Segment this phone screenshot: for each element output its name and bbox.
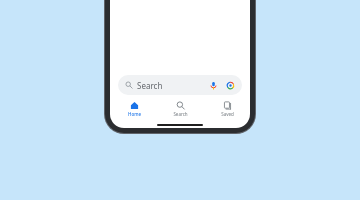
button[interactable]: Google Lens (224, 79, 236, 91)
button[interactable]: Saved (204, 99, 250, 119)
button[interactable]: Search (157, 99, 203, 119)
staticText: Saved (221, 111, 234, 117)
button[interactable]: Search (118, 75, 242, 95)
staticText: Search (173, 111, 188, 117)
button[interactable]: Voice search (207, 79, 219, 91)
staticText: Home (128, 111, 141, 117)
button[interactable]: Home (111, 99, 157, 119)
staticText: Search (137, 80, 163, 91)
